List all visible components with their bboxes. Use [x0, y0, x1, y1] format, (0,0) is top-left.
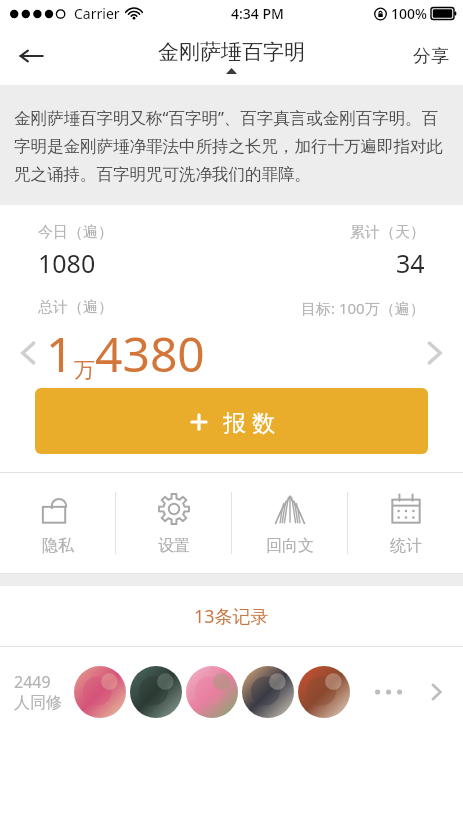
button[interactable]: 报 数: [35, 388, 428, 454]
staticText: Carrier: [74, 4, 120, 23]
button[interactable]: 回向文: [232, 473, 347, 573]
staticText: 1: [46, 321, 74, 386]
staticText: 人同修: [14, 693, 62, 713]
other: More: [419, 675, 453, 709]
button[interactable]: Next: [417, 336, 451, 370]
staticText: 4380: [95, 321, 205, 386]
staticText: 累计（天）: [350, 223, 425, 242]
staticText: 2449: [14, 671, 51, 693]
staticText: 100%: [391, 4, 427, 23]
staticText: 分享: [413, 45, 449, 68]
staticText: 金刚萨埵百字明又称“百字明”、百字真言或金刚百字明。百字明是金刚萨埵净罪法中所持…: [14, 106, 449, 185]
staticText: 报 数: [223, 406, 275, 437]
button[interactable]: 2449: [0, 647, 463, 736]
staticText: 今日（遍）: [38, 223, 113, 242]
staticText: 34: [396, 246, 425, 280]
button[interactable]: 统计: [348, 473, 463, 573]
staticText: 1080: [38, 246, 96, 280]
button[interactable]: 13条记录: [0, 586, 463, 646]
button[interactable]: 分享: [413, 45, 449, 68]
staticText: 回向文: [266, 536, 314, 556]
staticText: 金刚萨埵百字明: [158, 39, 305, 65]
staticText: 设置: [158, 536, 190, 556]
staticText: 4:34 PM: [231, 4, 284, 23]
button[interactable]: 设置: [116, 473, 231, 573]
staticText: 目标: 100万（遍）: [301, 298, 425, 318]
staticText: 万: [74, 357, 95, 383]
staticText: 统计: [390, 536, 422, 556]
button[interactable]: Previous: [12, 336, 46, 370]
staticText: 隐私: [42, 536, 74, 556]
staticText: 13条记录: [194, 604, 269, 629]
button[interactable]: 隐私: [0, 473, 115, 573]
staticText: 总计（遍）: [38, 298, 113, 317]
button[interactable]: Back: [8, 33, 54, 79]
